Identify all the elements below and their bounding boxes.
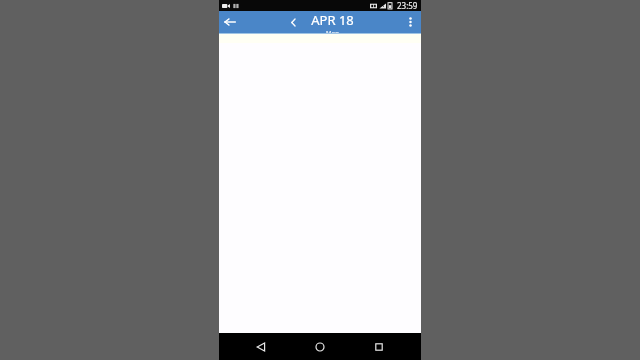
staticText: APR 18 — [311, 11, 354, 29]
button[interactable]: Back — [244, 333, 278, 360]
button[interactable]: Back — [219, 11, 241, 33]
staticText: Mon — [326, 29, 339, 33]
button[interactable]: Previous day — [285, 14, 301, 30]
staticText: 23:59 — [397, 0, 418, 11]
button[interactable]: Recent apps — [362, 333, 396, 360]
button[interactable]: More options — [399, 11, 421, 33]
button[interactable]: APR 18 — [309, 11, 356, 33]
button[interactable]: Home — [303, 333, 337, 360]
